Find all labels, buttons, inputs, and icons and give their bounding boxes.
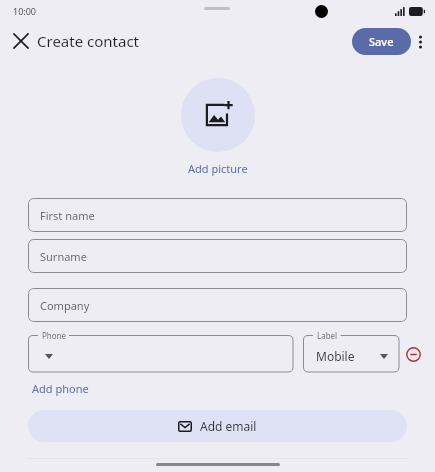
button[interactable]: Company bbox=[28, 288, 407, 322]
button[interactable]: First name bbox=[28, 198, 407, 232]
button[interactable]: Phone bbox=[28, 335, 294, 373]
button[interactable]: Remove phone bbox=[400, 341, 427, 368]
staticText: Phone bbox=[42, 330, 67, 341]
staticText: Label bbox=[317, 330, 338, 341]
button[interactable]: More options bbox=[411, 29, 430, 55]
staticText: Create contact bbox=[37, 31, 140, 51]
staticText: Save bbox=[369, 34, 394, 49]
staticText: Add email bbox=[200, 418, 257, 434]
button[interactable]: Add phone bbox=[30, 379, 91, 398]
button[interactable]: Add picture bbox=[0, 78, 435, 176]
staticText: First name bbox=[40, 208, 95, 223]
button[interactable]: Add email bbox=[28, 410, 407, 442]
button[interactable]: Surname bbox=[28, 239, 407, 273]
staticText: 10:00 bbox=[13, 5, 37, 17]
staticText: Company bbox=[40, 298, 90, 313]
staticText: Surname bbox=[40, 249, 87, 264]
button[interactable]: Save bbox=[352, 28, 411, 55]
staticText: Add picture bbox=[188, 161, 248, 176]
button[interactable]: Close bbox=[6, 26, 36, 56]
staticText: Mobile bbox=[316, 348, 355, 364]
button[interactable]: Label bbox=[303, 335, 400, 373]
